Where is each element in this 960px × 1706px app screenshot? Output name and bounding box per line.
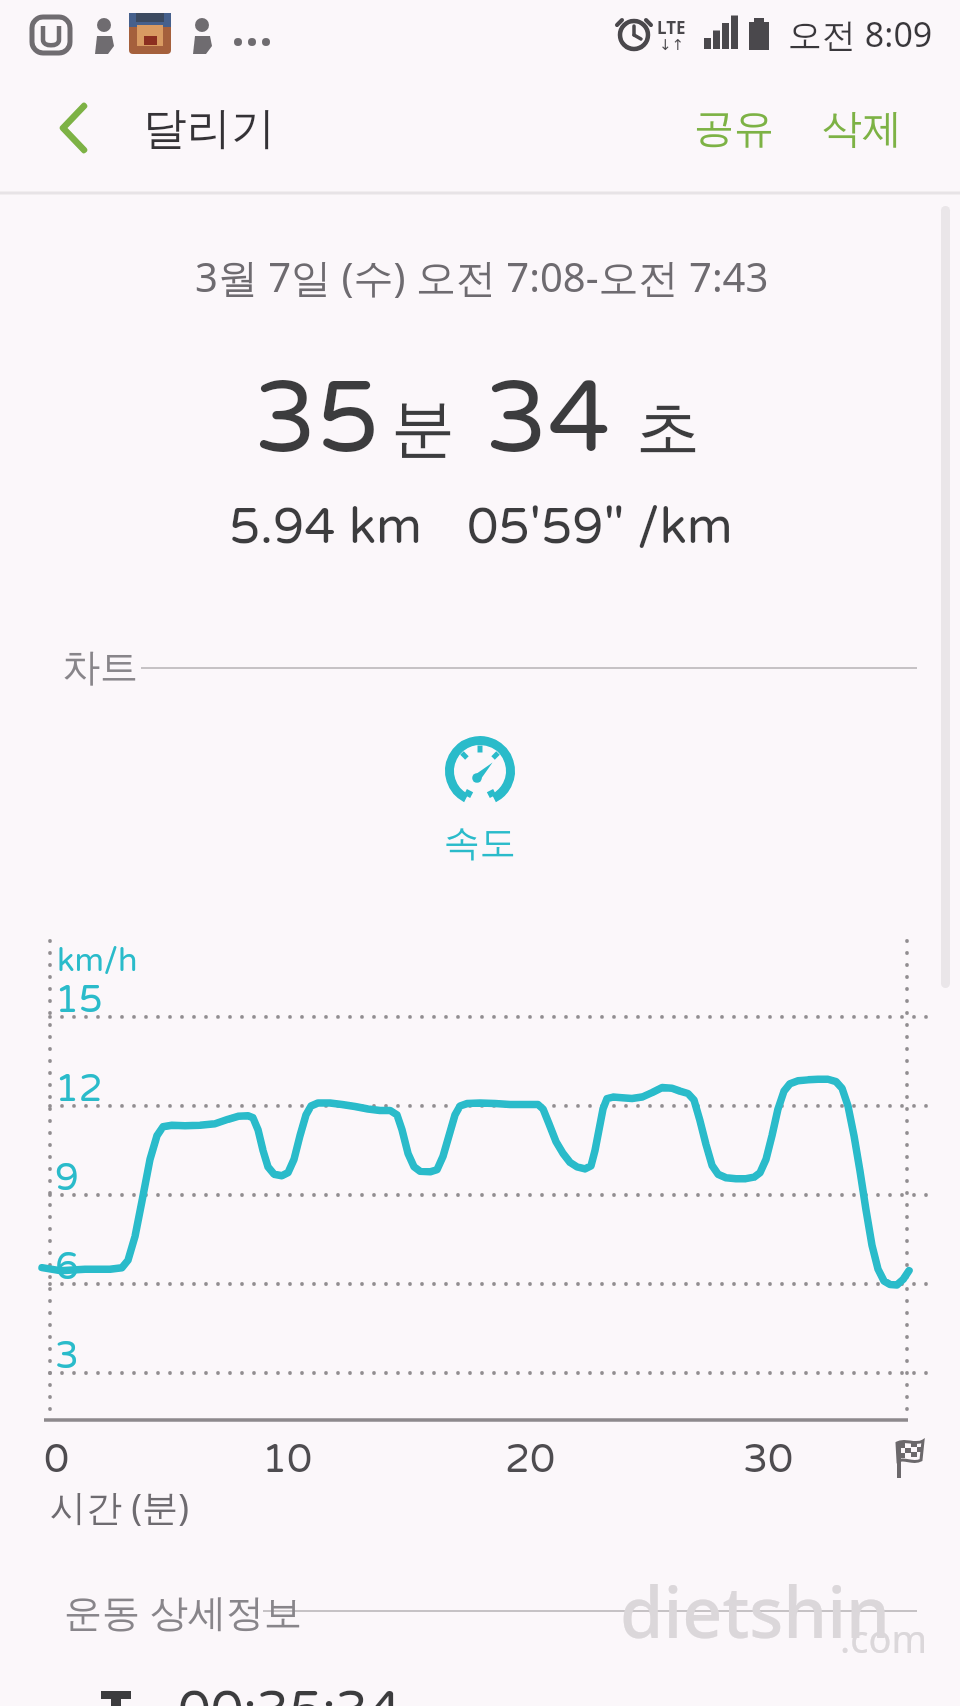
staticText: 10 — [262, 1435, 313, 1483]
staticText: ↓↑ — [659, 36, 685, 53]
staticText: 20 — [505, 1435, 556, 1483]
staticText: 분 — [391, 388, 455, 469]
staticText: dietshin — [620, 1563, 890, 1658]
staticText: 초 — [636, 388, 700, 469]
staticText: 5.94 km — [229, 497, 422, 557]
staticText: 3월 7일 (수) 오전 7:08-오전 7:43 — [195, 249, 769, 304]
staticText: 달리기 — [143, 101, 275, 156]
staticText: 차트 — [62, 643, 138, 691]
button[interactable]: 공유 — [0, 0, 150, 100]
staticText: 35 — [254, 359, 380, 479]
staticText: 00:35:34 — [178, 1679, 401, 1706]
staticText: km/h — [57, 942, 138, 981]
staticText: 15 — [55, 977, 103, 1023]
staticText: 삭제 — [822, 103, 902, 153]
staticText: 공유 — [694, 103, 774, 153]
button[interactable] — [420, 720, 540, 870]
staticText: 3 — [55, 1333, 79, 1379]
staticText: 운동 상세정보 — [64, 1585, 302, 1637]
button[interactable]: 삭제 — [0, 0, 150, 100]
staticText: .com — [840, 1612, 927, 1664]
staticText: LTE — [657, 16, 686, 39]
staticText: 34 — [485, 359, 611, 479]
staticText: 6 — [55, 1244, 79, 1290]
staticText: 12 — [55, 1066, 103, 1112]
staticText: 0 — [44, 1435, 70, 1483]
staticText: 30 — [743, 1435, 794, 1483]
staticText: 05'59" /km — [467, 497, 733, 557]
staticText: 속도 — [444, 820, 516, 865]
staticText: 시간 (분) — [50, 1482, 189, 1531]
button[interactable] — [40, 95, 110, 161]
staticText: 오전 8:09 — [788, 11, 933, 57]
staticText: 9 — [55, 1155, 79, 1201]
